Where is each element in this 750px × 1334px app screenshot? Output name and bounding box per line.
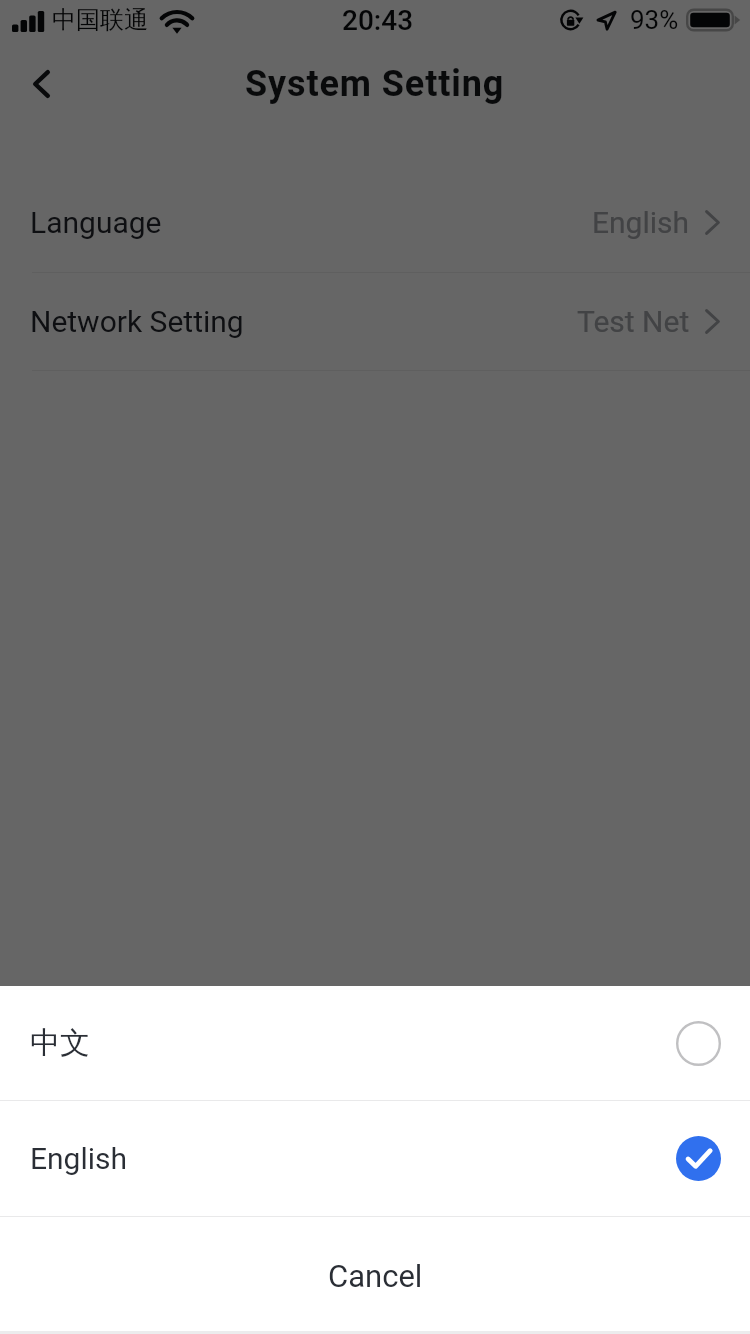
staticText: Test Net (577, 304, 690, 339)
staticText: 20:43 (342, 4, 414, 37)
button[interactable]: Network Setting (0, 273, 750, 370)
staticText: English (592, 205, 690, 240)
other: Selected (676, 1136, 721, 1181)
button[interactable]: 中文 (0, 986, 750, 1100)
staticText: System Setting (245, 63, 505, 105)
staticText: English (30, 1141, 128, 1176)
other: Not selected (676, 1021, 721, 1066)
staticText: Network Setting (30, 304, 244, 339)
button[interactable]: Cancel (0, 1217, 750, 1331)
staticText: Cancel (328, 1258, 423, 1294)
button[interactable]: Language (0, 173, 750, 272)
staticText: 93% (630, 5, 679, 35)
button[interactable]: Back (12, 55, 70, 113)
staticText: Language (30, 205, 162, 240)
button[interactable]: English (0, 1101, 750, 1216)
button[interactable]: Dismiss (0, 0, 750, 1334)
staticText: 中国联通 (52, 5, 148, 35)
staticText: 中文 (30, 1024, 90, 1062)
